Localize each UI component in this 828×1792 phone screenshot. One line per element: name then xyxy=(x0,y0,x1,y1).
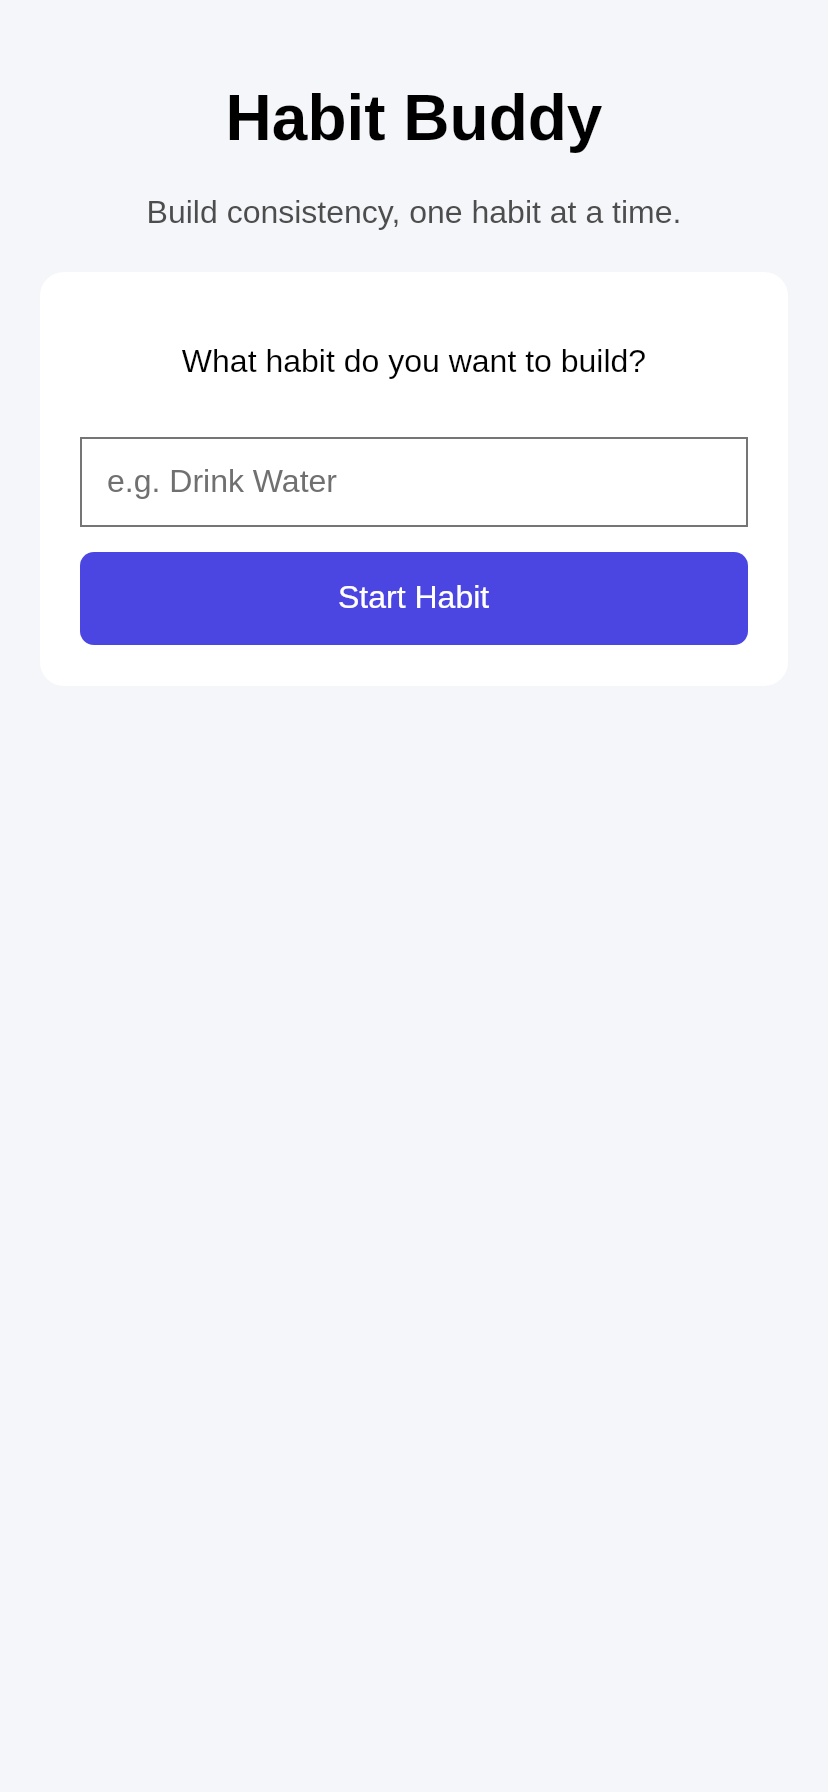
staticText: Start Habit xyxy=(338,579,490,615)
staticText: e.g. Drink Water xyxy=(107,463,337,499)
button[interactable]: e.g. Drink Water xyxy=(80,437,748,527)
staticText: Build consistency, one habit at a time. xyxy=(0,194,828,230)
button[interactable]: Start Habit xyxy=(80,552,748,645)
staticText: What habit do you want to build? xyxy=(80,343,748,379)
staticText: Habit Buddy xyxy=(0,82,828,154)
